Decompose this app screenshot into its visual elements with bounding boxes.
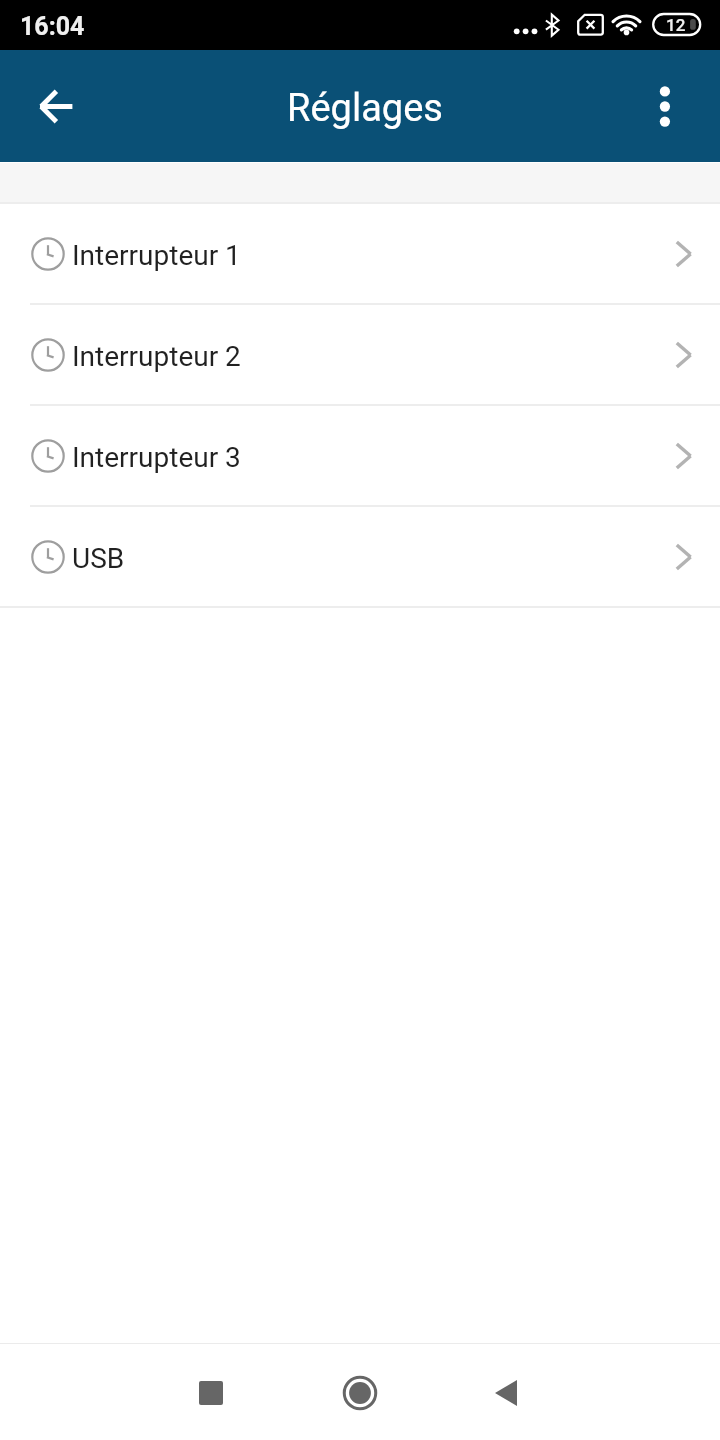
button[interactable]: Interrupteur 1 xyxy=(0,204,720,305)
button[interactable]: Navigate back xyxy=(461,1348,550,1437)
button[interactable]: Recent apps xyxy=(166,1348,255,1437)
staticText: Réglages xyxy=(287,86,443,131)
button[interactable]: Back xyxy=(12,62,100,150)
staticText: Interrupteur 3 xyxy=(72,441,241,474)
staticText: Interrupteur 1 xyxy=(72,239,241,272)
staticText: Interrupteur 2 xyxy=(72,340,241,373)
staticText: USB xyxy=(72,542,125,575)
staticText: 12 xyxy=(666,15,686,35)
button[interactable]: Interrupteur 3 xyxy=(0,406,720,507)
staticText: 16:04 xyxy=(20,12,85,41)
button[interactable]: Interrupteur 2 xyxy=(0,305,720,406)
button[interactable]: Home xyxy=(315,1348,404,1437)
button[interactable]: More options xyxy=(620,62,708,150)
button[interactable]: USB xyxy=(0,507,720,608)
